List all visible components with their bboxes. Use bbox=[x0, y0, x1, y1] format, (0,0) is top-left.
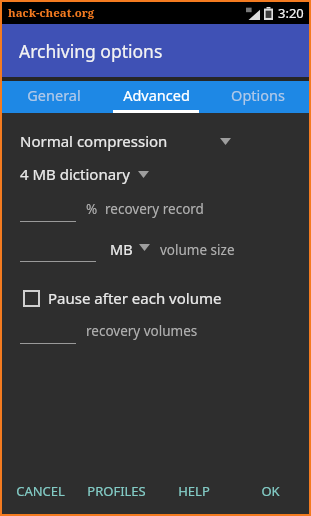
staticText: recovery record bbox=[105, 200, 204, 218]
button[interactable]: MB bbox=[110, 239, 150, 259]
staticText: PROFILES bbox=[87, 482, 146, 500]
button[interactable]: General bbox=[2, 81, 105, 113]
other: Dropdown bbox=[138, 171, 149, 178]
button[interactable]: Options bbox=[207, 81, 309, 113]
staticText: Advanced bbox=[123, 85, 190, 105]
staticText: General bbox=[27, 85, 81, 105]
staticText: % bbox=[86, 200, 98, 218]
button[interactable]: Advanced bbox=[105, 81, 207, 113]
other: Dropdown bbox=[139, 244, 150, 251]
button[interactable]: Text field bbox=[20, 199, 76, 222]
staticText: 4 MB dictionary bbox=[20, 164, 130, 184]
button[interactable]: Pause after each volume bbox=[24, 285, 222, 311]
staticText: Options bbox=[231, 85, 285, 105]
button[interactable]: CANCEL bbox=[2, 468, 78, 514]
staticText: 3:20 bbox=[278, 4, 304, 22]
staticText: OK bbox=[261, 482, 280, 500]
staticText: recovery volumes bbox=[86, 322, 198, 340]
button[interactable]: OK bbox=[232, 468, 309, 514]
staticText: volume size bbox=[160, 241, 235, 259]
staticText: MB bbox=[110, 239, 133, 259]
staticText: HELP bbox=[178, 482, 210, 500]
staticText: Pause after each volume bbox=[48, 288, 222, 308]
button[interactable]: Normal compression bbox=[20, 127, 231, 155]
button[interactable]: HELP bbox=[155, 468, 232, 514]
staticText: Archiving options bbox=[19, 39, 163, 63]
staticText: hack-cheat.org bbox=[8, 5, 95, 21]
other: Dropdown bbox=[220, 138, 231, 145]
button[interactable]: 4 MB dictionary bbox=[20, 161, 149, 187]
button[interactable]: Text field bbox=[20, 321, 76, 344]
button[interactable]: Text field bbox=[20, 239, 96, 262]
button[interactable]: PROFILES bbox=[78, 468, 155, 514]
staticText: CANCEL bbox=[16, 482, 65, 500]
staticText: Normal compression bbox=[20, 131, 220, 151]
